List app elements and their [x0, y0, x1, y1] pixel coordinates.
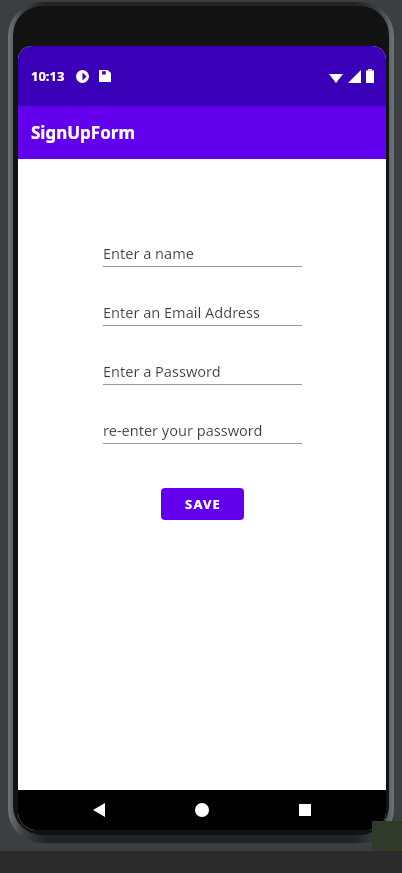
button[interactable]: Recent apps	[283, 790, 327, 830]
staticText: Enter an Email Address	[103, 302, 260, 322]
staticText: SignUpForm	[31, 121, 135, 144]
staticText: re-enter your password	[103, 420, 263, 440]
button[interactable]: SAVE	[161, 488, 244, 520]
button[interactable]: Enter a Password	[103, 361, 302, 385]
button[interactable]: Enter a name	[103, 243, 302, 267]
button[interactable]: Home	[180, 790, 224, 830]
staticText: 10:13	[31, 67, 65, 85]
staticText: SAVE	[185, 495, 221, 513]
staticText: Enter a name	[103, 243, 194, 263]
button[interactable]: Enter an Email Address	[103, 302, 302, 326]
button[interactable]: Back	[77, 790, 121, 830]
staticText: Enter a Password	[103, 361, 221, 381]
button[interactable]: re-enter your password	[103, 420, 302, 444]
